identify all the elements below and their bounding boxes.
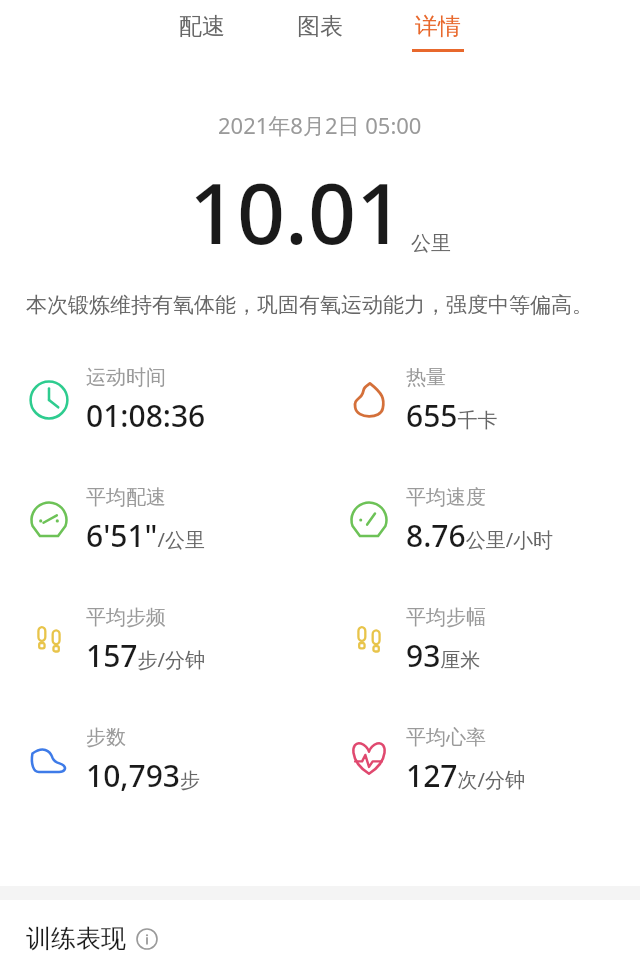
staticText: 157步/分钟 — [86, 635, 205, 676]
button[interactable]: Stride — [320, 580, 640, 700]
staticText: 01:08:36 — [86, 395, 206, 436]
button[interactable]: Steps — [0, 700, 320, 820]
other: Calories — [346, 377, 392, 423]
staticText: 93厘米 — [406, 635, 481, 676]
other: Duration — [26, 377, 72, 423]
button[interactable]: Cadence — [0, 580, 320, 700]
other: Info — [136, 928, 158, 950]
staticText: 平均配速 — [86, 485, 166, 510]
staticText: 热量 — [406, 365, 446, 390]
other: Heart rate — [346, 737, 392, 783]
staticText: 平均心率 — [406, 725, 486, 750]
other: Average pace — [26, 497, 72, 543]
staticText: 平均步频 — [86, 605, 166, 630]
staticText: 公里 — [411, 231, 451, 256]
button[interactable]: 训练表现 — [0, 900, 640, 977]
staticText: 8.76公里/小时 — [406, 515, 554, 556]
other: Stride — [346, 617, 392, 663]
staticText: 配速 — [179, 12, 225, 41]
staticText: 平均速度 — [406, 485, 486, 510]
staticText: 127次/分钟 — [406, 755, 525, 796]
staticText: 655千卡 — [406, 395, 498, 436]
staticText: 详情 — [415, 12, 461, 41]
staticText: 运动时间 — [86, 365, 166, 390]
staticText: 训练表现 — [26, 923, 126, 954]
button[interactable]: Heart rate — [320, 700, 640, 820]
button[interactable]: Average pace — [0, 460, 320, 580]
staticText: 平均步幅 — [406, 605, 486, 630]
staticText: 本次锻炼维持有氧体能，巩固有氧运动能力，强度中等偏高。 — [26, 292, 614, 318]
button[interactable]: Calories — [320, 340, 640, 460]
button[interactable]: Average speed — [320, 460, 640, 580]
staticText: 2021年8月2日 05:00 — [218, 110, 422, 140]
button[interactable]: 详情 — [406, 12, 470, 52]
staticText: 6'51"/公里 — [86, 515, 205, 556]
button[interactable]: 配速 — [170, 12, 234, 52]
staticText: 步数 — [86, 725, 126, 750]
other: Steps — [26, 737, 72, 783]
staticText: 图表 — [297, 12, 343, 41]
other: Cadence — [26, 617, 72, 663]
staticText: 10,793步 — [86, 755, 200, 796]
button[interactable]: 图表 — [288, 12, 352, 52]
button[interactable]: Duration — [0, 340, 320, 460]
other: Average speed — [346, 497, 392, 543]
staticText: 10.01 — [189, 154, 405, 268]
